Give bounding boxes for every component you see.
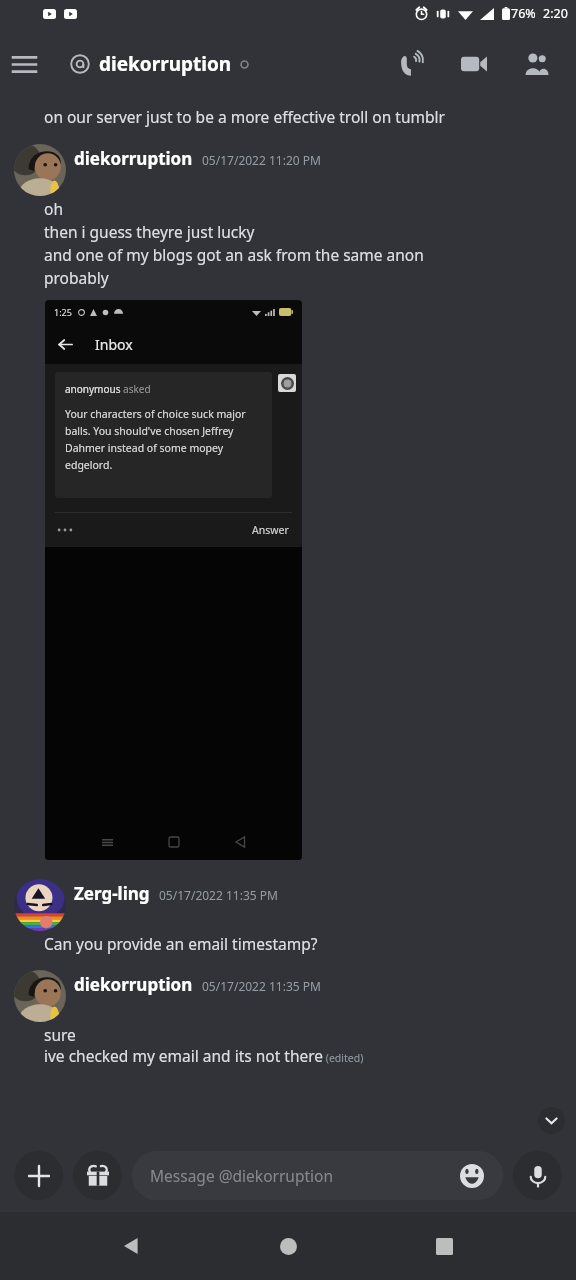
button[interactable]: Back: [108, 1222, 156, 1270]
staticText: Message @diekorruption: [150, 1165, 459, 1186]
staticText: ive checked my email and its not there (…: [44, 1045, 364, 1066]
staticText: diekorruption: [74, 973, 193, 996]
staticText: 05/17/2022 11:35 PM: [159, 887, 278, 903]
button[interactable]: Start voice call: [388, 40, 436, 88]
button[interactable]: Message @diekorruption: [132, 1151, 503, 1200]
staticText: diekorruption: [99, 51, 232, 77]
button[interactable]: Image attachment: Tumblr inbox screensho…: [45, 300, 302, 860]
staticText: Your characters of choice suck major bal…: [65, 407, 262, 472]
staticText: sure: [44, 1024, 76, 1045]
button[interactable]: ive checked my email and its not there (…: [44, 1045, 364, 1066]
button[interactable]: and one of my blogs got an ask from the …: [0, 242, 576, 265]
button[interactable]: probably: [0, 265, 576, 288]
staticText: and one of my blogs got an ask from the …: [44, 244, 424, 265]
button[interactable]: Select emoji: [459, 1163, 485, 1189]
staticText: on our server just to be a more effectiv…: [44, 106, 445, 127]
button[interactable]: Home: [264, 1222, 312, 1270]
button[interactable]: Start video call: [450, 40, 498, 88]
staticText: 05/17/2022 11:20 PM: [202, 152, 321, 168]
staticText: 2:20: [543, 5, 568, 22]
staticText: 1:25: [54, 306, 72, 318]
button[interactable]: diekorruption: [70, 51, 388, 77]
staticText: Zerg-ling: [74, 882, 150, 905]
staticText: then i guess theyre just lucky: [44, 221, 255, 242]
staticText: Can you provide an email timestamp?: [44, 933, 318, 954]
staticText: Inbox: [95, 335, 133, 354]
staticText: Answer: [252, 523, 289, 537]
button[interactable]: Recent apps: [420, 1222, 468, 1270]
button[interactable]: Can you provide an email timestamp?: [0, 931, 576, 954]
staticText: oh: [44, 198, 63, 219]
button[interactable]: oh: [0, 196, 576, 219]
button[interactable]: Add attachment: [14, 1151, 63, 1200]
button[interactable]: Jump to present: [538, 1107, 565, 1134]
button[interactable]: Open navigation drawer: [0, 40, 48, 88]
staticText: 76%: [511, 5, 536, 22]
button[interactable]: then i guess theyre just lucky: [0, 219, 576, 242]
button[interactable]: Record voice message: [513, 1151, 562, 1200]
button[interactable]: diekorruption: [0, 144, 576, 196]
button[interactable]: diekorruption: [0, 970, 576, 1022]
button[interactable]: Send a gift: [73, 1151, 122, 1200]
button[interactable]: Show members: [512, 40, 560, 88]
staticText: diekorruption: [74, 147, 193, 170]
staticText: 05/17/2022 11:35 PM: [202, 978, 321, 994]
button[interactable]: sure: [0, 1022, 576, 1045]
button[interactable]: Zerg-ling: [0, 879, 576, 931]
staticText: anonymous asked: [65, 382, 151, 396]
staticText: probably: [44, 267, 109, 288]
